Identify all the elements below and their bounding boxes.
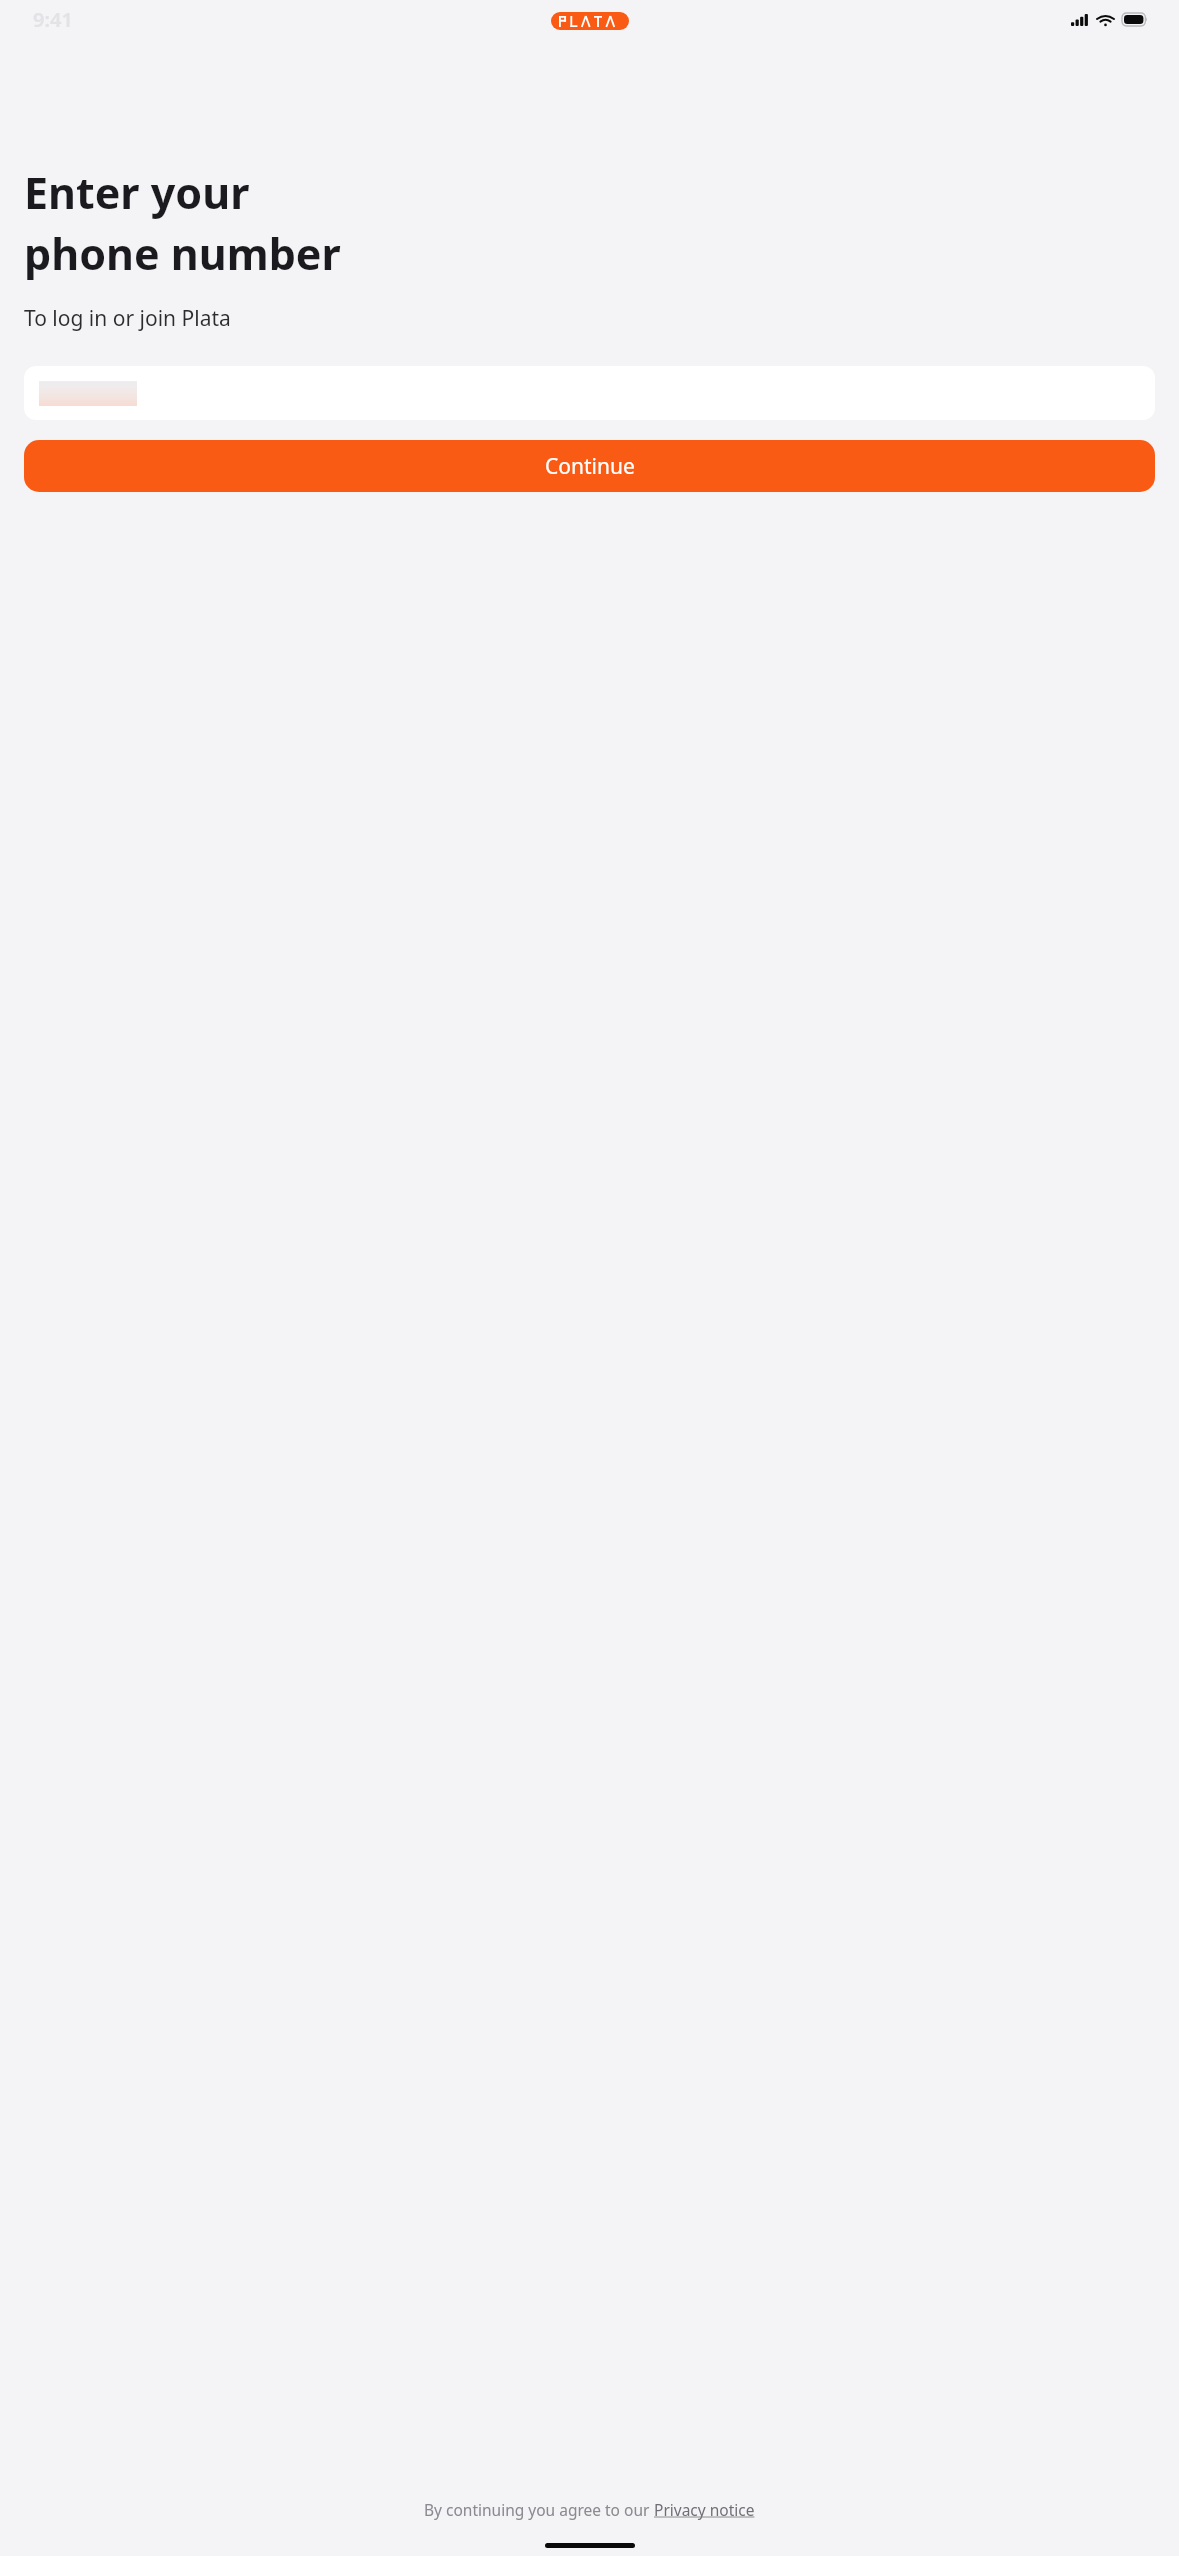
staticText: Enter your — [24, 163, 250, 222]
staticText: phone number — [24, 224, 341, 283]
staticText: Continue — [545, 452, 635, 481]
button[interactable]: Continue — [24, 440, 1155, 492]
staticText: Privacy notice — [654, 2499, 755, 2520]
staticText: 9:41 — [33, 6, 73, 33]
button[interactable]: Phone number input — [24, 366, 1155, 420]
staticText: By continuing you agree to our — [424, 2499, 654, 2520]
button[interactable]: Privacy notice — [654, 2499, 755, 2520]
other: Plata — [551, 12, 629, 30]
staticText: To log in or join Plata — [24, 304, 231, 333]
